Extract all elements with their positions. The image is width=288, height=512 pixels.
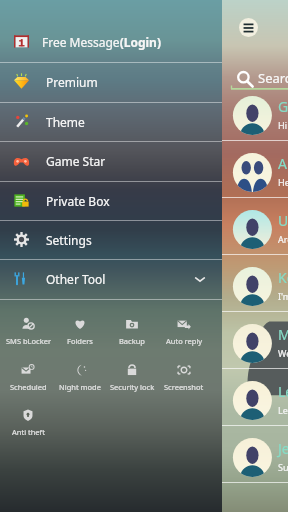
staticText: April bbox=[278, 154, 288, 173]
staticText: Anti theft bbox=[12, 427, 45, 437]
button[interactable]: Settings bbox=[0, 220, 222, 259]
button[interactable]: Gary bbox=[0, 84, 288, 141]
staticText: Kevin bbox=[278, 268, 288, 287]
staticText: Folders bbox=[67, 336, 93, 346]
staticText: Backup bbox=[119, 336, 145, 346]
staticText: Game Star bbox=[46, 153, 106, 169]
button[interactable]: April bbox=[0, 141, 288, 198]
button[interactable]: Folders bbox=[54, 314, 106, 360]
staticText: We will bbox=[278, 347, 288, 359]
staticText: Search bbox=[258, 69, 288, 87]
button[interactable]: Security lock bbox=[106, 360, 158, 405]
button[interactable]: Leo bbox=[0, 369, 288, 426]
staticText: Scheduled bbox=[10, 382, 47, 392]
button[interactable]: SMS bLocker bbox=[2, 314, 54, 360]
button[interactable]: Other Tool bbox=[0, 259, 222, 298]
staticText: Other Tool bbox=[46, 271, 106, 287]
staticText: Sure bbox=[278, 461, 288, 473]
button[interactable]: Screenshot bbox=[158, 360, 210, 405]
staticText: Security lock bbox=[110, 382, 155, 392]
button[interactable]: Theme bbox=[0, 102, 222, 141]
staticText: Screenshot bbox=[164, 382, 204, 392]
staticText: Leo bbox=[278, 382, 288, 401]
button[interactable]: Search bbox=[0, 62, 288, 90]
button[interactable]: Kevin bbox=[0, 255, 288, 312]
button[interactable]: Free Message(Login) bbox=[0, 22, 222, 61]
staticText: Uncle bbox=[278, 211, 288, 230]
staticText: I'm ok bbox=[278, 290, 288, 302]
staticText: Night mode bbox=[59, 382, 101, 392]
staticText: Mom bbox=[278, 325, 288, 344]
staticText: Gary bbox=[278, 97, 288, 116]
staticText: Premium bbox=[46, 74, 98, 90]
staticText: Hello ho bbox=[278, 176, 288, 188]
staticText: Hi there bbox=[278, 119, 288, 131]
button[interactable]: Backup bbox=[106, 314, 158, 360]
button[interactable]: Game Star bbox=[0, 141, 222, 180]
button[interactable]: Scheduled bbox=[2, 360, 54, 405]
button[interactable]: Premium bbox=[0, 62, 222, 101]
staticText: Free Message(Login) bbox=[42, 34, 161, 50]
staticText: Private Box bbox=[46, 193, 110, 209]
button[interactable]: Night mode bbox=[54, 360, 106, 405]
button[interactable]: Open navigation drawer bbox=[239, 18, 258, 37]
staticText: Jerry bbox=[278, 439, 288, 458]
button[interactable]: Uncle bbox=[0, 198, 288, 255]
button[interactable]: Mom bbox=[0, 312, 288, 369]
staticText: Are you bbox=[278, 233, 288, 245]
staticText: Auto reply bbox=[166, 336, 203, 346]
staticText: Let's go bbox=[278, 404, 288, 416]
staticText: Settings bbox=[46, 232, 92, 248]
button[interactable]: Anti theft bbox=[2, 405, 54, 450]
staticText: Theme bbox=[46, 114, 85, 130]
button[interactable]: Private Box bbox=[0, 181, 222, 220]
button[interactable]: Auto reply bbox=[158, 314, 210, 360]
staticText: SMS bLocker bbox=[6, 336, 51, 346]
button[interactable]: Jerry bbox=[0, 426, 288, 483]
